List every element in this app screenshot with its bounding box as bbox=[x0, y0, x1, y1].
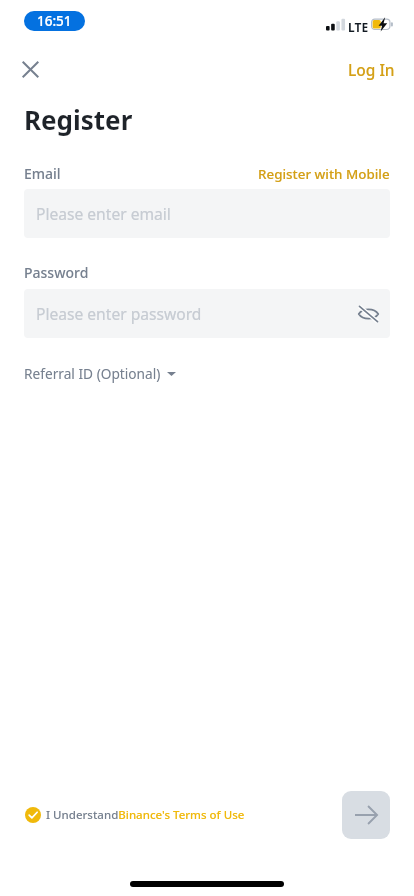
button[interactable]: Please enter email bbox=[24, 189, 390, 238]
staticText: I UnderstandBinance's Terms of Use bbox=[46, 807, 245, 823]
button[interactable]: Log In bbox=[348, 57, 395, 81]
staticText: Register bbox=[24, 102, 133, 137]
staticText: Please enter password bbox=[36, 303, 202, 324]
button[interactable]: Next bbox=[342, 791, 390, 839]
staticText: Email bbox=[24, 164, 61, 183]
button[interactable]: Close bbox=[14, 53, 47, 86]
button[interactable]: I UnderstandBinance's Terms of Use bbox=[25, 807, 245, 823]
button[interactable]: Please enter password bbox=[24, 289, 390, 338]
button[interactable]: Register with Mobile bbox=[258, 165, 390, 183]
staticText: LTE bbox=[348, 19, 369, 35]
staticText: Register with Mobile bbox=[258, 165, 390, 183]
button[interactable]: Referral ID (Optional) bbox=[24, 364, 176, 383]
staticText: Password bbox=[24, 263, 89, 282]
staticText: Referral ID (Optional) bbox=[24, 364, 161, 383]
staticText: 16:51 bbox=[37, 12, 72, 30]
button[interactable]: Show password bbox=[349, 295, 387, 333]
staticText: Log In bbox=[348, 59, 395, 80]
staticText: Please enter email bbox=[36, 203, 171, 224]
